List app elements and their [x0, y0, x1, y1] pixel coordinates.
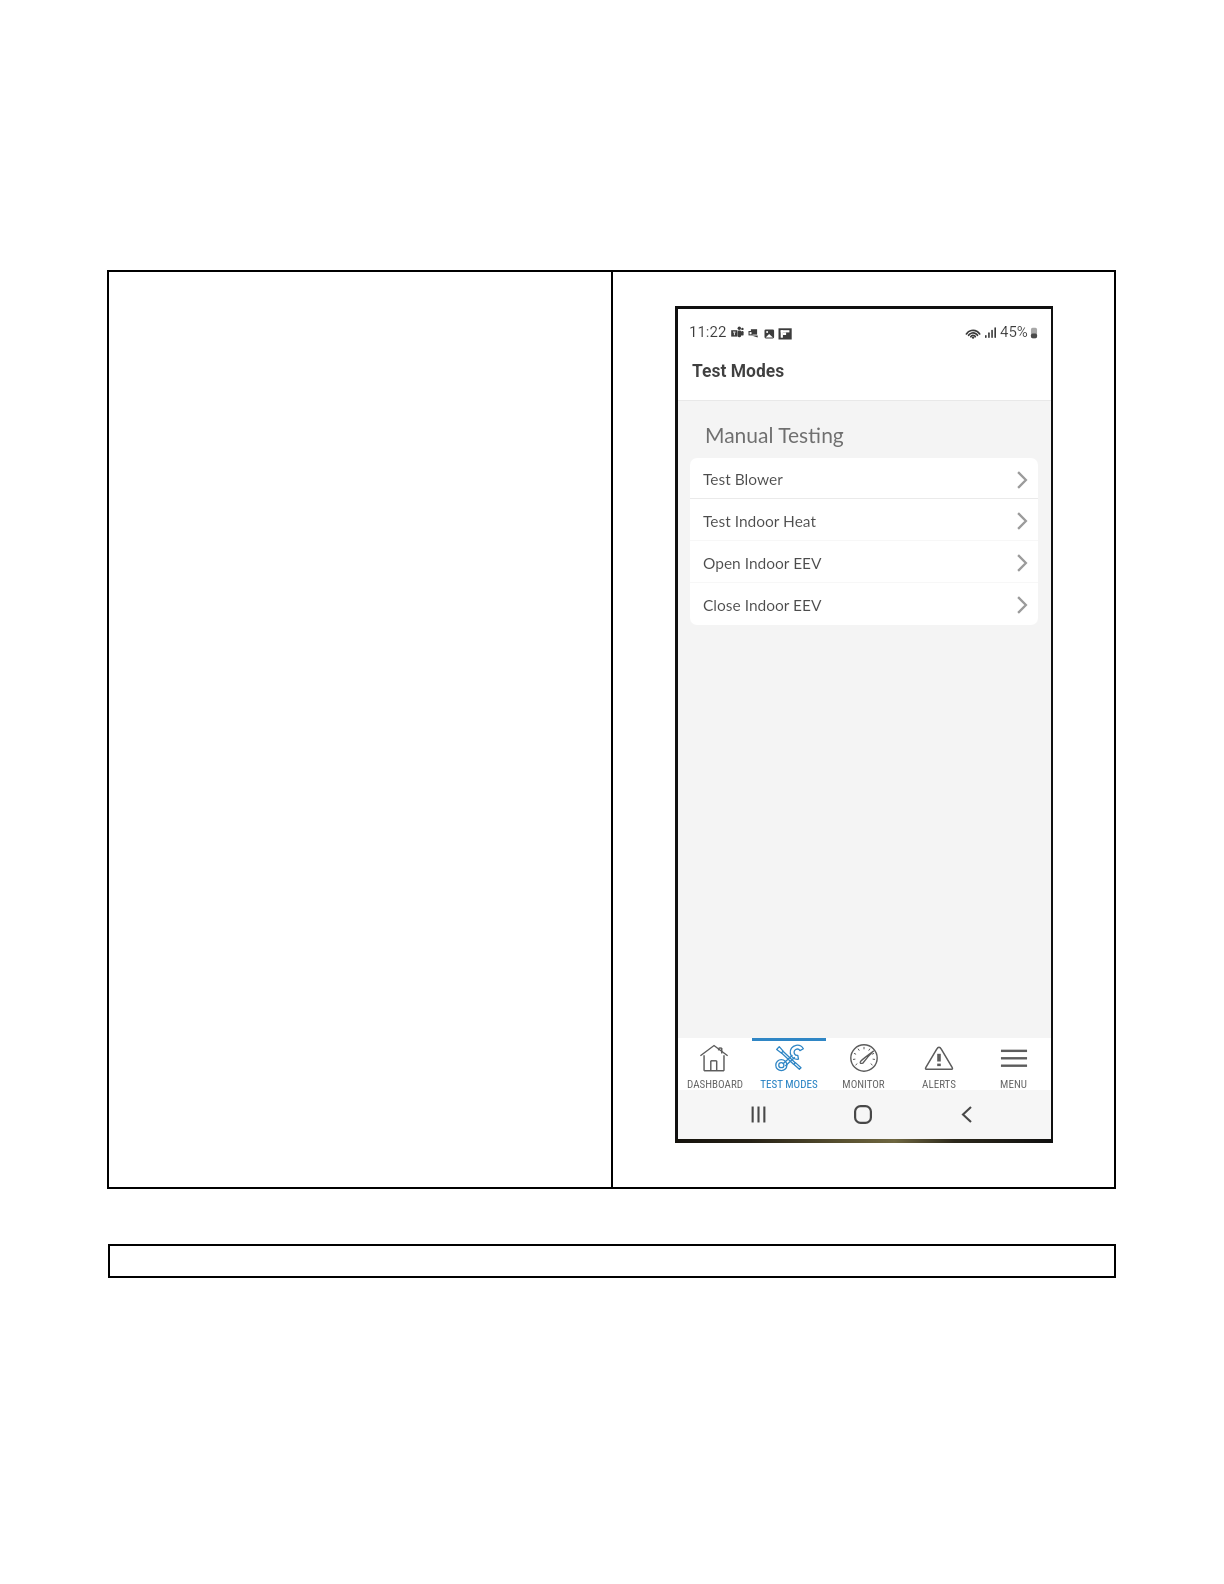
staticText: TEST MODES: [760, 1078, 818, 1090]
staticText: DASHBOARD: [687, 1078, 743, 1090]
staticText: MENU: [1000, 1078, 1027, 1090]
button[interactable]: Test Blower: [690, 458, 1038, 499]
staticText: Manual Testing: [705, 422, 844, 447]
button[interactable]: Test Indoor Heat: [690, 499, 1038, 541]
button[interactable]: MENU: [976, 1038, 1051, 1090]
button[interactable]: MONITOR: [826, 1038, 901, 1090]
staticText: Test Blower: [703, 470, 783, 489]
button[interactable]: ALERTS: [901, 1038, 976, 1090]
staticText: MONITOR: [842, 1078, 885, 1090]
button[interactable]: Recent apps: [736, 1090, 780, 1139]
staticText: Close Indoor EEV: [703, 596, 822, 615]
button[interactable]: Close Indoor EEV: [690, 583, 1038, 625]
staticText: ALERTS: [922, 1078, 956, 1090]
button[interactable]: TEST MODES: [752, 1038, 826, 1090]
button[interactable]: Open Indoor EEV: [690, 541, 1038, 583]
staticText: Test Modes: [692, 361, 785, 382]
staticText: 11:22: [689, 323, 727, 341]
button[interactable]: Back: [945, 1090, 989, 1139]
button[interactable]: DASHBOARD: [678, 1038, 752, 1090]
staticText: Open Indoor EEV: [703, 554, 822, 573]
staticText: Test Indoor Heat: [703, 512, 817, 531]
staticText: 45%: [1000, 323, 1028, 341]
button[interactable]: Home: [841, 1090, 885, 1139]
